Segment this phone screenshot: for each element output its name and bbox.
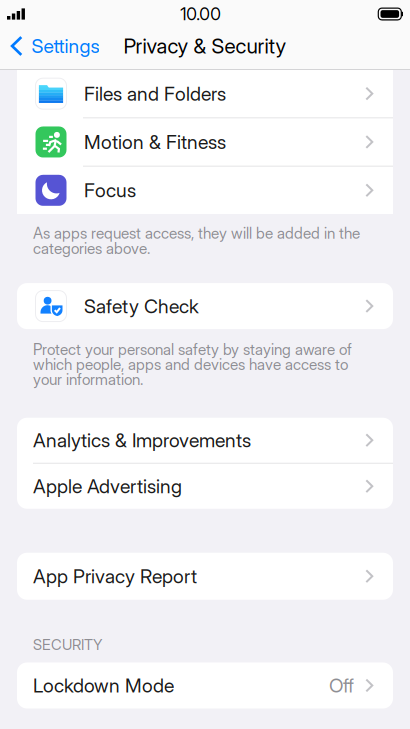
staticText: SECURITY — [33, 636, 102, 653]
button[interactable]: Lockdown Mode — [17, 662, 393, 708]
button[interactable]: Analytics & Improvements — [17, 418, 393, 463]
staticText: Files and Folders — [84, 82, 226, 105]
button[interactable]: Settings — [0, 27, 109, 65]
staticText: Motion & Fitness — [84, 130, 226, 154]
staticText: Analytics & Improvements — [33, 429, 251, 452]
button[interactable]: Safety Check — [17, 283, 393, 329]
button[interactable]: Apple Advertising — [17, 464, 393, 509]
staticText: Safety Check — [84, 294, 199, 318]
button[interactable]: Files and Folders — [17, 70, 393, 117]
staticText: Focus — [84, 179, 136, 202]
staticText: Off — [329, 674, 354, 697]
staticText: Protect your personal safety by staying … — [33, 340, 352, 389]
staticText: Lockdown Mode — [33, 674, 174, 697]
staticText: 10.00 — [180, 3, 221, 24]
button[interactable]: App Privacy Report — [17, 553, 393, 600]
staticText: As apps request access, they will be add… — [33, 224, 360, 258]
staticText: App Privacy Report — [33, 565, 197, 588]
staticText: Apple Advertising — [33, 475, 182, 498]
button[interactable]: Focus — [17, 167, 393, 214]
staticText: Privacy & Security — [123, 33, 286, 58]
staticText: Settings — [31, 34, 99, 58]
button[interactable]: Motion & Fitness — [17, 118, 393, 166]
